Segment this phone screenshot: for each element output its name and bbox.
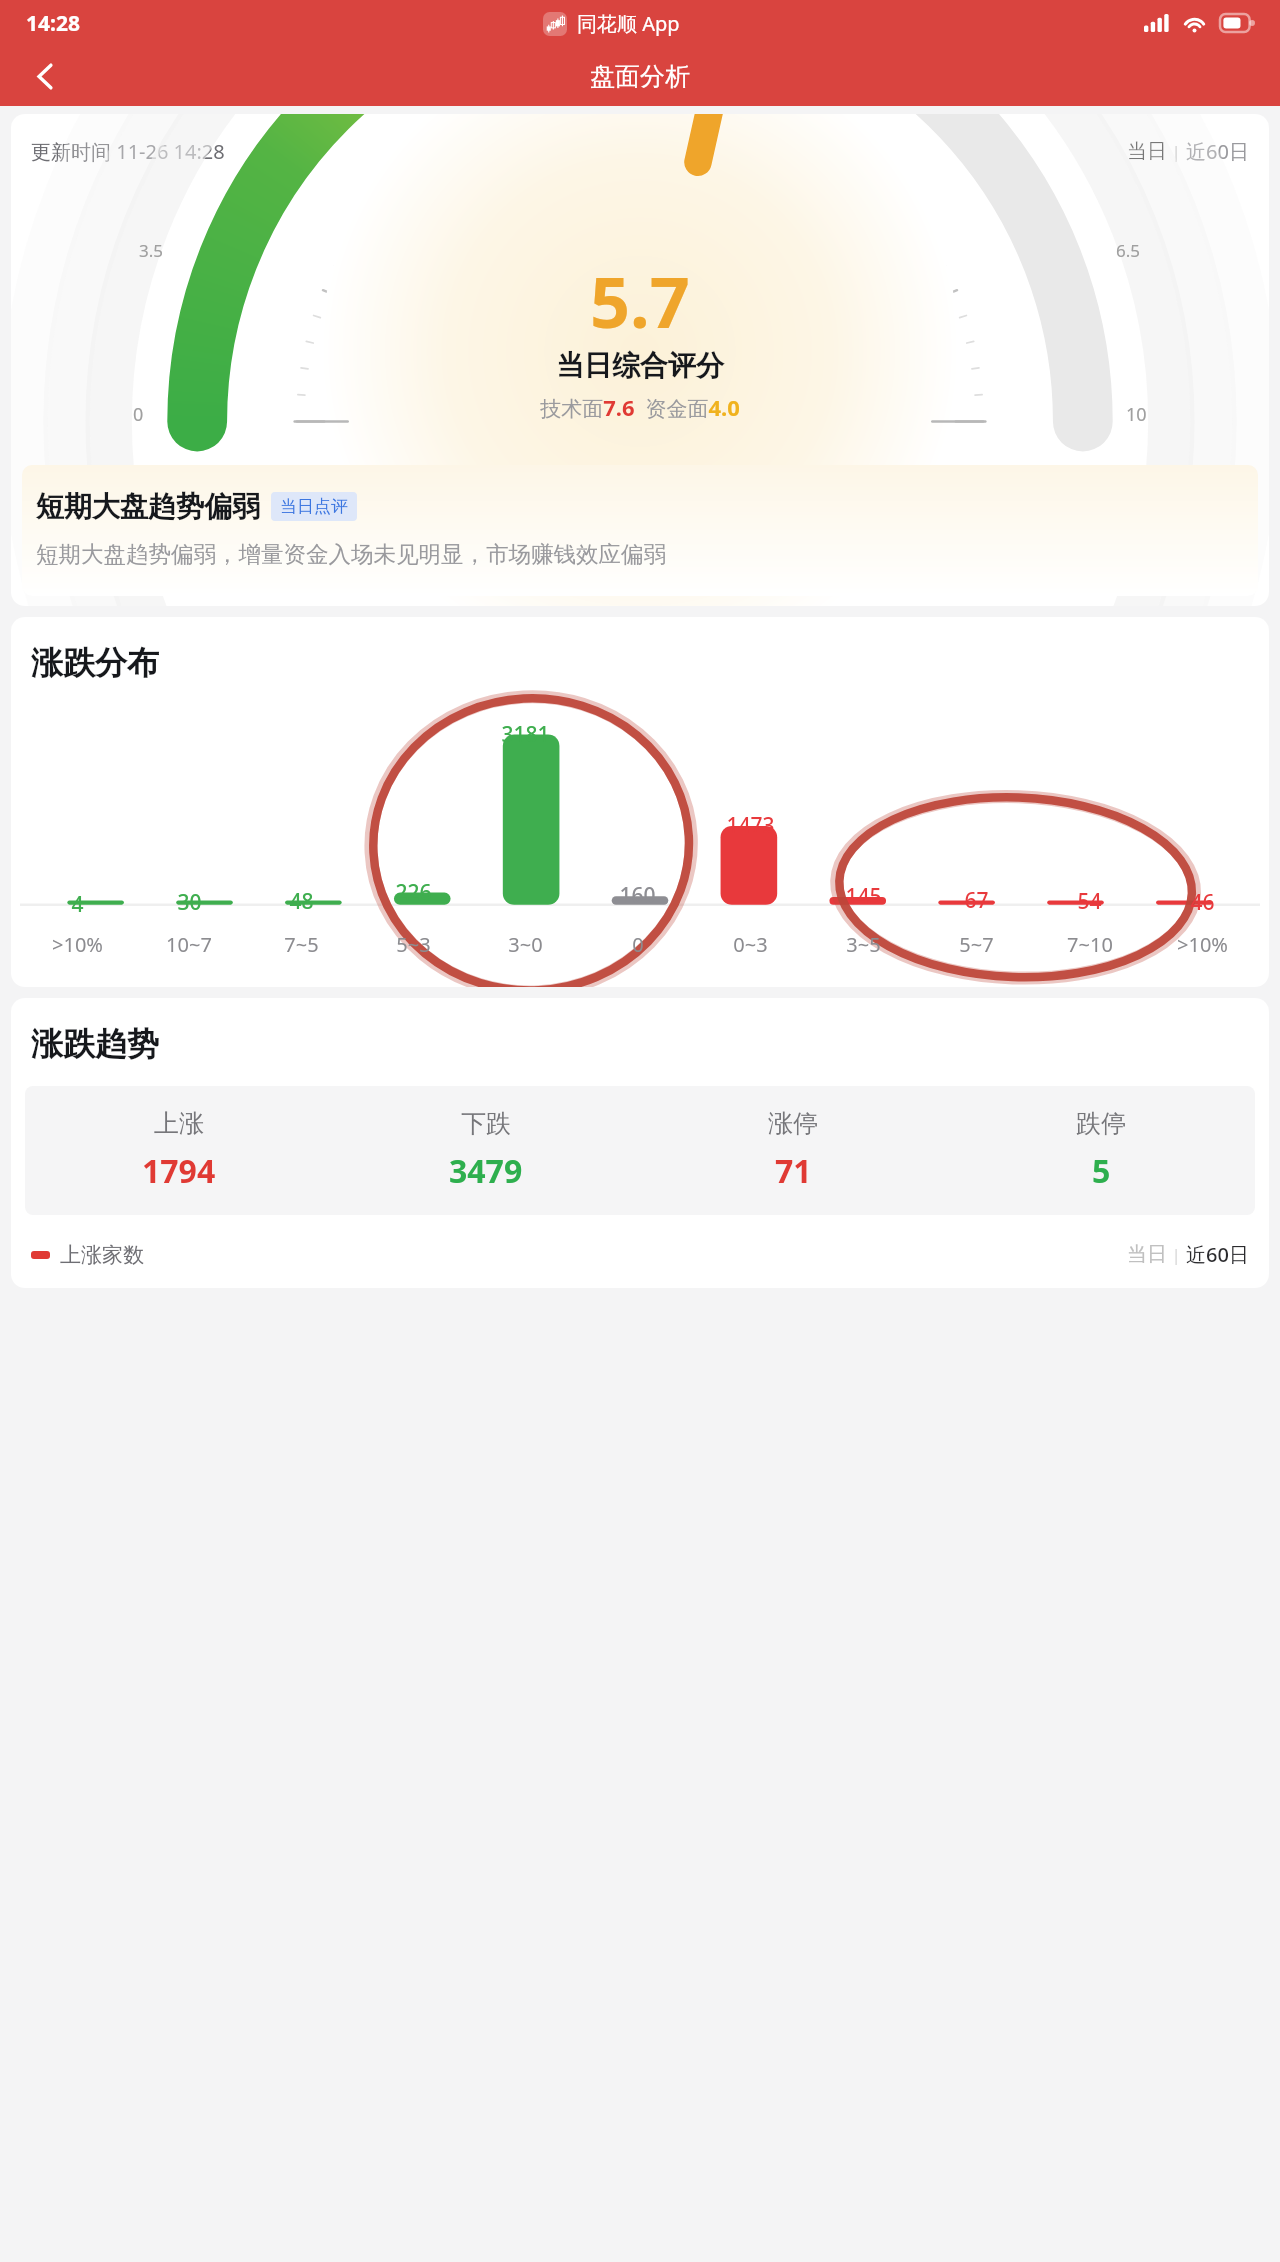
staticText: 145: [845, 882, 882, 911]
staticText: 5~3: [396, 931, 431, 958]
button[interactable]: 跌停: [947, 1108, 1255, 1193]
staticText: 涨停: [768, 1108, 818, 1139]
staticText: 7~5: [284, 931, 319, 958]
button[interactable]: 当日: [1127, 139, 1167, 164]
staticText: >10%: [52, 931, 103, 958]
staticText: 盘面分析: [590, 61, 690, 92]
staticText: 160: [619, 881, 656, 910]
button[interactable]: 涨停: [639, 1108, 947, 1193]
staticText: 7~10: [1067, 931, 1113, 958]
staticText: 67: [964, 886, 989, 915]
staticText: 涨跌分布: [31, 643, 159, 683]
staticText: 上涨: [154, 1108, 204, 1139]
staticText: 48: [289, 887, 314, 916]
staticText: 更新时间 11-26 14:28: [31, 138, 225, 165]
staticText: 46: [1190, 888, 1215, 917]
staticText: 0: [133, 402, 144, 427]
staticText: 10~7: [166, 931, 212, 958]
staticText: 3479: [449, 1149, 523, 1193]
button[interactable]: 近60日: [1186, 1241, 1249, 1268]
button[interactable]: 近60日: [1186, 138, 1249, 165]
staticText: 54: [1077, 887, 1102, 916]
button[interactable]: 下跌: [332, 1108, 639, 1193]
staticText: 4: [71, 890, 84, 919]
staticText: 14:28: [26, 9, 80, 38]
staticText: 0: [632, 931, 644, 958]
staticText: 0~3: [733, 931, 768, 958]
staticText: 71: [775, 1149, 812, 1193]
staticText: |: [1167, 140, 1186, 163]
staticText: 30: [177, 888, 202, 917]
staticText: 3~0: [508, 931, 543, 958]
staticText: |: [1167, 1243, 1186, 1266]
staticText: 近60日: [1186, 1241, 1249, 1268]
staticText: 5~7: [959, 931, 994, 958]
button[interactable]: 上涨家数: [31, 1242, 144, 1268]
staticText: 跌停: [1076, 1108, 1126, 1139]
staticText: 226: [395, 878, 432, 907]
staticText: 5: [1092, 1149, 1111, 1193]
staticText: 同花顺 App: [577, 10, 680, 37]
staticText: 技术面7.6 资金面4.0: [540, 392, 740, 422]
button[interactable]: 短期大盘趋势偏弱: [22, 465, 1258, 596]
staticText: 6.5: [1116, 239, 1141, 262]
staticText: 下跌: [461, 1108, 511, 1139]
staticText: 3.5: [139, 239, 164, 262]
staticText: 3181: [501, 720, 550, 749]
staticText: 10: [1126, 402, 1147, 427]
staticText: 上涨家数: [60, 1242, 144, 1268]
button[interactable]: 当日: [1127, 1242, 1167, 1267]
staticText: 3~5: [846, 931, 881, 958]
staticText: 5.7: [590, 253, 690, 348]
staticText: 当日: [1127, 1242, 1167, 1267]
staticText: 当日综合评分: [556, 348, 724, 383]
staticText: 当日点评: [280, 496, 348, 517]
staticText: 当日: [1127, 139, 1167, 164]
button[interactable]: Back: [18, 49, 72, 103]
staticText: 短期大盘趋势偏弱: [36, 489, 260, 524]
staticText: 近60日: [1186, 138, 1249, 165]
staticText: 涨跌趋势: [31, 1024, 159, 1064]
staticText: 短期大盘趋势偏弱，增量资金入场未见明显，市场赚钱效应偏弱: [36, 540, 666, 568]
staticText: 1473: [726, 811, 775, 840]
staticText: 1794: [142, 1149, 216, 1193]
staticText: >10%: [1177, 931, 1228, 958]
button[interactable]: 上涨: [25, 1108, 332, 1193]
